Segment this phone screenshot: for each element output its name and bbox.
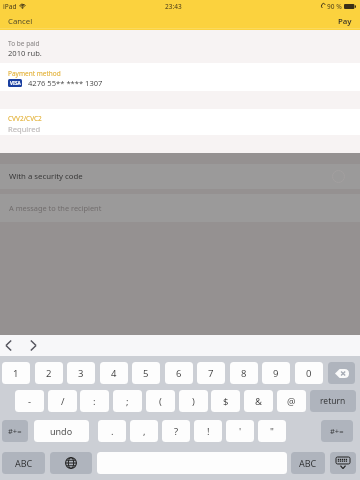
staticText: $ [223, 395, 229, 408]
button[interactable]: undo [34, 420, 89, 442]
button[interactable]: 3 [67, 362, 95, 384]
button[interactable]: 1 [2, 362, 30, 384]
staticText: Payment method [8, 69, 61, 78]
staticText: : [93, 395, 96, 408]
button[interactable]: ( [146, 390, 175, 412]
staticText: 7 [208, 367, 214, 380]
staticText: iPad [3, 2, 17, 11]
button[interactable]: $ [211, 390, 240, 412]
staticText: 2010 rub. [8, 48, 42, 58]
staticText: . [111, 425, 114, 438]
staticText: A message to the recipient [9, 203, 102, 213]
button[interactable]: #+= [321, 420, 353, 442]
staticText: Pay [338, 16, 352, 27]
button[interactable]: 9 [262, 362, 290, 384]
staticText: ' [239, 425, 242, 438]
button[interactable]: 5 [132, 362, 160, 384]
button[interactable]: : [80, 390, 109, 412]
button[interactable]: 6 [165, 362, 193, 384]
staticText: 0 [306, 367, 312, 380]
staticText: 3 [78, 367, 84, 380]
staticText: #+= [330, 426, 344, 436]
button[interactable]: A message to the recipient [0, 194, 360, 222]
staticText: ? [174, 425, 179, 438]
staticText: VISA [10, 80, 21, 86]
staticText: , [143, 425, 146, 438]
button[interactable]: . [98, 420, 126, 442]
staticText: 5 [143, 367, 149, 380]
staticText: 9 [273, 367, 279, 380]
staticText: To be paid [8, 39, 40, 48]
button[interactable]: ; [113, 390, 142, 412]
staticText: Cancel [8, 16, 33, 27]
staticText: ! [207, 425, 210, 438]
button[interactable]: ' [226, 420, 254, 442]
button[interactable]: return [310, 390, 356, 412]
button[interactable]: 0 [295, 362, 323, 384]
staticText: 1 [13, 367, 19, 380]
staticText: & [255, 395, 262, 408]
button[interactable]: ! [194, 420, 222, 442]
button[interactable]: Previous field [0, 335, 16, 356]
staticText: ABC [15, 457, 33, 469]
button[interactable]: ABC [291, 452, 325, 474]
staticText: - [28, 395, 32, 408]
button[interactable]: Next field [25, 335, 41, 356]
button[interactable]: ABC [2, 452, 45, 474]
staticText: 8 [241, 367, 247, 380]
button[interactable]: @ [277, 390, 306, 412]
staticText: 90 % [327, 2, 342, 11]
button[interactable]: Pay [338, 12, 352, 30]
staticText: " [270, 425, 274, 438]
staticText: return [320, 395, 346, 407]
staticText: Required [8, 124, 41, 134]
staticText: / [61, 395, 65, 408]
button[interactable]: #+= [2, 420, 28, 442]
button[interactable]: With a security code [0, 164, 360, 189]
button[interactable]: 4 [100, 362, 128, 384]
button[interactable]: / [48, 390, 77, 412]
staticText: undo [50, 425, 73, 437]
button[interactable]: ) [179, 390, 208, 412]
button[interactable]: 8 [230, 362, 258, 384]
staticText: ) [192, 395, 195, 408]
staticText: 2 [46, 367, 52, 380]
staticText: CVV2/CVC2 [8, 114, 42, 123]
staticText: 4 [111, 367, 117, 380]
button[interactable]: Change keyboard [50, 452, 92, 474]
staticText: ABC [299, 457, 317, 469]
staticText: 23:43 [165, 2, 182, 11]
staticText: ; [126, 395, 129, 408]
staticText: 4276 55** **** 1307 [28, 78, 103, 88]
staticText: 6 [176, 367, 182, 380]
staticText: @ [287, 395, 296, 408]
button[interactable]: ? [162, 420, 190, 442]
button[interactable]: Cancel [8, 12, 33, 30]
button[interactable]: & [244, 390, 273, 412]
button[interactable]: - [15, 390, 44, 412]
staticText: ( [159, 395, 162, 408]
button[interactable]: 7 [197, 362, 225, 384]
staticText: #+= [8, 426, 22, 436]
button[interactable]: Backspace [328, 362, 355, 384]
staticText: With a security code [9, 171, 83, 182]
button[interactable]: Hide keyboard [330, 452, 356, 474]
button[interactable]: , [130, 420, 158, 442]
button[interactable]: " [258, 420, 286, 442]
button[interactable]: 2 [35, 362, 63, 384]
